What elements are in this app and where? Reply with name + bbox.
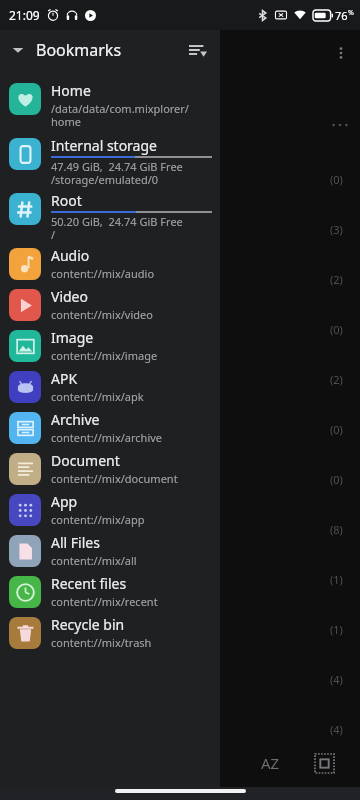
- staticText: (3): [330, 222, 343, 237]
- staticText: 47.49 GiB, 24.74 GiB Free /storage/emula…: [51, 159, 183, 187]
- staticText: Recent files: [51, 574, 127, 593]
- staticText: content://mix/video: [51, 307, 153, 322]
- staticText: content://mix/archive: [51, 430, 163, 445]
- staticText: (0): [330, 322, 343, 337]
- button[interactable]: Audio: [0, 243, 220, 284]
- staticText: (0): [330, 422, 343, 437]
- staticText: (2): [330, 372, 343, 387]
- staticText: AZ: [261, 753, 280, 773]
- button[interactable]: APK: [0, 366, 220, 407]
- staticText: %: [348, 8, 354, 18]
- staticText: content://mix/trash: [51, 635, 152, 650]
- staticText: content://mix/document: [51, 471, 178, 486]
- button[interactable]: Video: [0, 284, 220, 325]
- staticText: Recycle bin: [51, 615, 125, 634]
- staticText: 76: [335, 8, 348, 23]
- staticText: Internal storage: [51, 136, 157, 155]
- staticText: Bookmarks: [36, 39, 122, 61]
- button[interactable]: Recent files: [0, 571, 220, 612]
- staticText: (0): [330, 172, 343, 187]
- staticText: content://mix/apk: [51, 389, 144, 404]
- staticText: (8): [330, 522, 343, 537]
- button[interactable]: Archive: [0, 407, 220, 448]
- staticText: content://mix/image: [51, 348, 158, 363]
- button[interactable]: Root: [0, 188, 220, 243]
- button[interactable]: Image: [0, 325, 220, 366]
- button[interactable]: Bookmarks: [0, 30, 220, 70]
- staticText: content://mix/app: [51, 512, 145, 527]
- staticText: content://mix/audio: [51, 266, 155, 281]
- staticText: (4): [330, 722, 343, 737]
- staticText: Root: [51, 191, 82, 210]
- button[interactable]: Document: [0, 448, 220, 489]
- staticText: (2): [330, 272, 343, 287]
- button[interactable]: Select all: [304, 743, 344, 783]
- staticText: (1): [330, 572, 343, 587]
- staticText: APK: [51, 369, 78, 388]
- button[interactable]: AZ: [248, 741, 292, 785]
- staticText: 50.20 GiB, 24.74 GiB Free /: [51, 214, 183, 242]
- staticText: content://mix/all: [51, 553, 137, 568]
- staticText: App: [51, 492, 78, 511]
- staticText: (1): [330, 622, 343, 637]
- staticText: Audio: [51, 246, 90, 265]
- staticText: Home: [51, 81, 91, 100]
- staticText: Document: [51, 451, 120, 470]
- staticText: (0): [330, 472, 343, 487]
- button[interactable]: Home: [0, 78, 220, 133]
- button[interactable]: More options: [326, 38, 356, 68]
- staticText: All Files: [51, 533, 100, 552]
- button[interactable]: All Files: [0, 530, 220, 571]
- button[interactable]: Sort: [178, 30, 218, 70]
- staticText: Video: [51, 287, 88, 306]
- staticText: (4): [330, 672, 343, 687]
- staticText: /data/data/com.mixplorer/ home: [51, 101, 189, 129]
- staticText: Archive: [51, 410, 100, 429]
- staticText: 21:09: [9, 7, 40, 23]
- button[interactable]: Internal storage: [0, 133, 220, 188]
- button[interactable]: Recycle bin: [0, 612, 220, 653]
- button[interactable]: App: [0, 489, 220, 530]
- staticText: content://mix/recent: [51, 594, 158, 609]
- staticText: Image: [51, 328, 94, 347]
